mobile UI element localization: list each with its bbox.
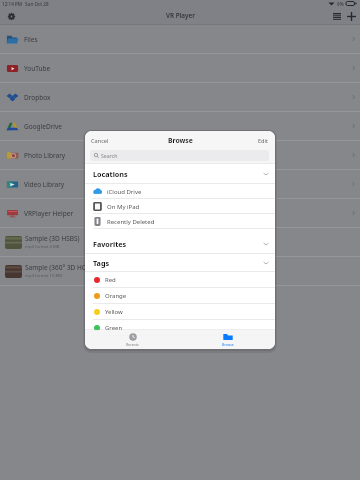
button[interactable]: Settings — [4, 9, 18, 23]
button[interactable]: iCloud Drive — [85, 184, 275, 199]
button[interactable]: Recents — [85, 330, 180, 349]
button[interactable]: YouTube — [0, 54, 360, 83]
button[interactable]: Video Library — [0, 170, 360, 199]
button[interactable]: Dropbox — [0, 83, 360, 112]
staticText: Orange — [105, 292, 127, 300]
button[interactable]: Yellow — [85, 304, 275, 320]
staticText: 9% — [337, 1, 344, 7]
staticText: Recents — [126, 342, 139, 347]
staticText: YouTube — [24, 64, 51, 73]
staticText: Green — [105, 324, 123, 332]
staticText: 12:14 PM — [2, 1, 22, 7]
button[interactable]: Edit — [252, 131, 275, 150]
staticText: Locations — [93, 169, 128, 179]
button[interactable]: Sample (3D HSBS) — [0, 228, 360, 257]
staticText: On My iPad — [107, 203, 140, 211]
button[interactable]: Cancel — [85, 131, 115, 150]
staticText: Yellow — [105, 308, 123, 316]
staticText: Video Library — [24, 180, 65, 189]
button[interactable]: Recently Deleted — [85, 214, 275, 229]
staticText: VR Player — [166, 11, 195, 20]
staticText: iCloud Drive — [107, 188, 142, 196]
staticText: Sample (3D HSBS) — [25, 234, 80, 243]
button[interactable]: Locations — [85, 164, 275, 184]
button[interactable]: Red — [85, 272, 275, 288]
staticText: mp4 format 4 MB — [25, 244, 60, 250]
staticText: Dropbox — [24, 93, 51, 102]
staticText: Recently Deleted — [107, 218, 155, 226]
button[interactable]: Playlist — [330, 9, 344, 23]
staticText: Files — [24, 35, 38, 44]
staticText: Browse — [222, 342, 234, 347]
staticText: mp4 format 10 MB — [25, 273, 62, 279]
button[interactable]: Tags — [85, 254, 275, 272]
button[interactable]: On My iPad — [85, 199, 275, 214]
button[interactable]: VRPlayer Helper — [0, 199, 360, 228]
staticText: Sample (360° 3D HOU) — [25, 263, 94, 272]
staticText: Tags — [93, 258, 110, 268]
staticText: Search — [101, 152, 118, 159]
staticText: Photo Library — [24, 151, 66, 160]
staticText: Edit — [258, 137, 269, 145]
staticText: Red — [105, 276, 116, 284]
button[interactable]: GoogleDrive — [0, 112, 360, 141]
button[interactable]: Photo Library — [0, 141, 360, 170]
staticText: Sun Oct 28 — [25, 1, 49, 7]
button[interactable]: Favorites — [85, 234, 275, 254]
button[interactable]: Files — [0, 25, 360, 54]
button[interactable]: Sample (360° 3D HOU) — [0, 257, 360, 286]
button[interactable]: Search — [90, 150, 269, 161]
button[interactable]: Add — [344, 9, 358, 23]
button[interactable]: Browse — [180, 330, 275, 349]
button[interactable]: Green — [85, 320, 275, 336]
staticText: Browse — [168, 136, 193, 145]
staticText: VRPlayer Helper — [24, 209, 74, 218]
staticText: Cancel — [91, 137, 109, 145]
staticText: GoogleDrive — [24, 122, 63, 131]
staticText: Favorites — [93, 239, 127, 249]
button[interactable]: Orange — [85, 288, 275, 304]
